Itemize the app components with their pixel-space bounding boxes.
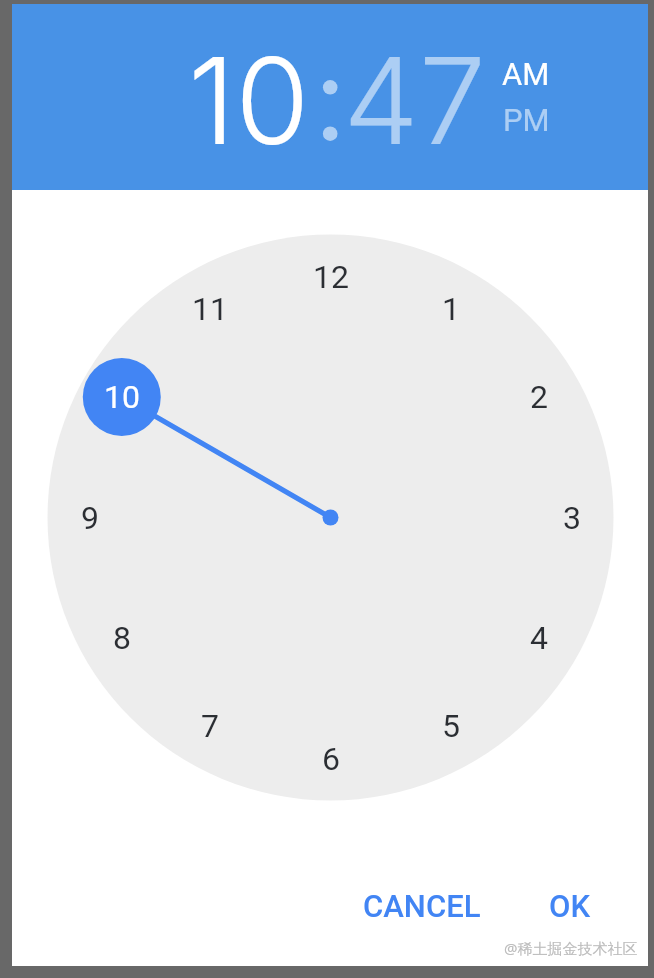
staticText: OK bbox=[549, 888, 590, 924]
staticText: 8 bbox=[113, 619, 131, 657]
staticText: 10:47 bbox=[188, 28, 486, 173]
staticText: 10 bbox=[104, 378, 140, 416]
staticText: 3 bbox=[563, 499, 581, 537]
staticText: 5 bbox=[442, 707, 460, 745]
staticText: 7 bbox=[201, 707, 219, 745]
staticText: CANCEL bbox=[363, 888, 481, 924]
staticText: PM bbox=[503, 102, 550, 138]
button[interactable]: PM bbox=[481, 98, 571, 142]
button[interactable]: AM bbox=[481, 52, 571, 96]
staticText: 2 bbox=[530, 378, 548, 416]
button[interactable]: CANCEL bbox=[337, 874, 507, 938]
staticText: 1 bbox=[442, 290, 460, 328]
staticText: 12 bbox=[313, 258, 349, 296]
staticText: AM bbox=[502, 56, 550, 92]
staticText: 6 bbox=[322, 740, 340, 778]
staticText: 11 bbox=[192, 290, 228, 328]
button[interactable]: OK bbox=[514, 874, 624, 938]
staticText: 9 bbox=[81, 499, 99, 537]
staticText: 4 bbox=[530, 619, 548, 657]
staticText: @稀土掘金技术社区 bbox=[504, 938, 638, 958]
